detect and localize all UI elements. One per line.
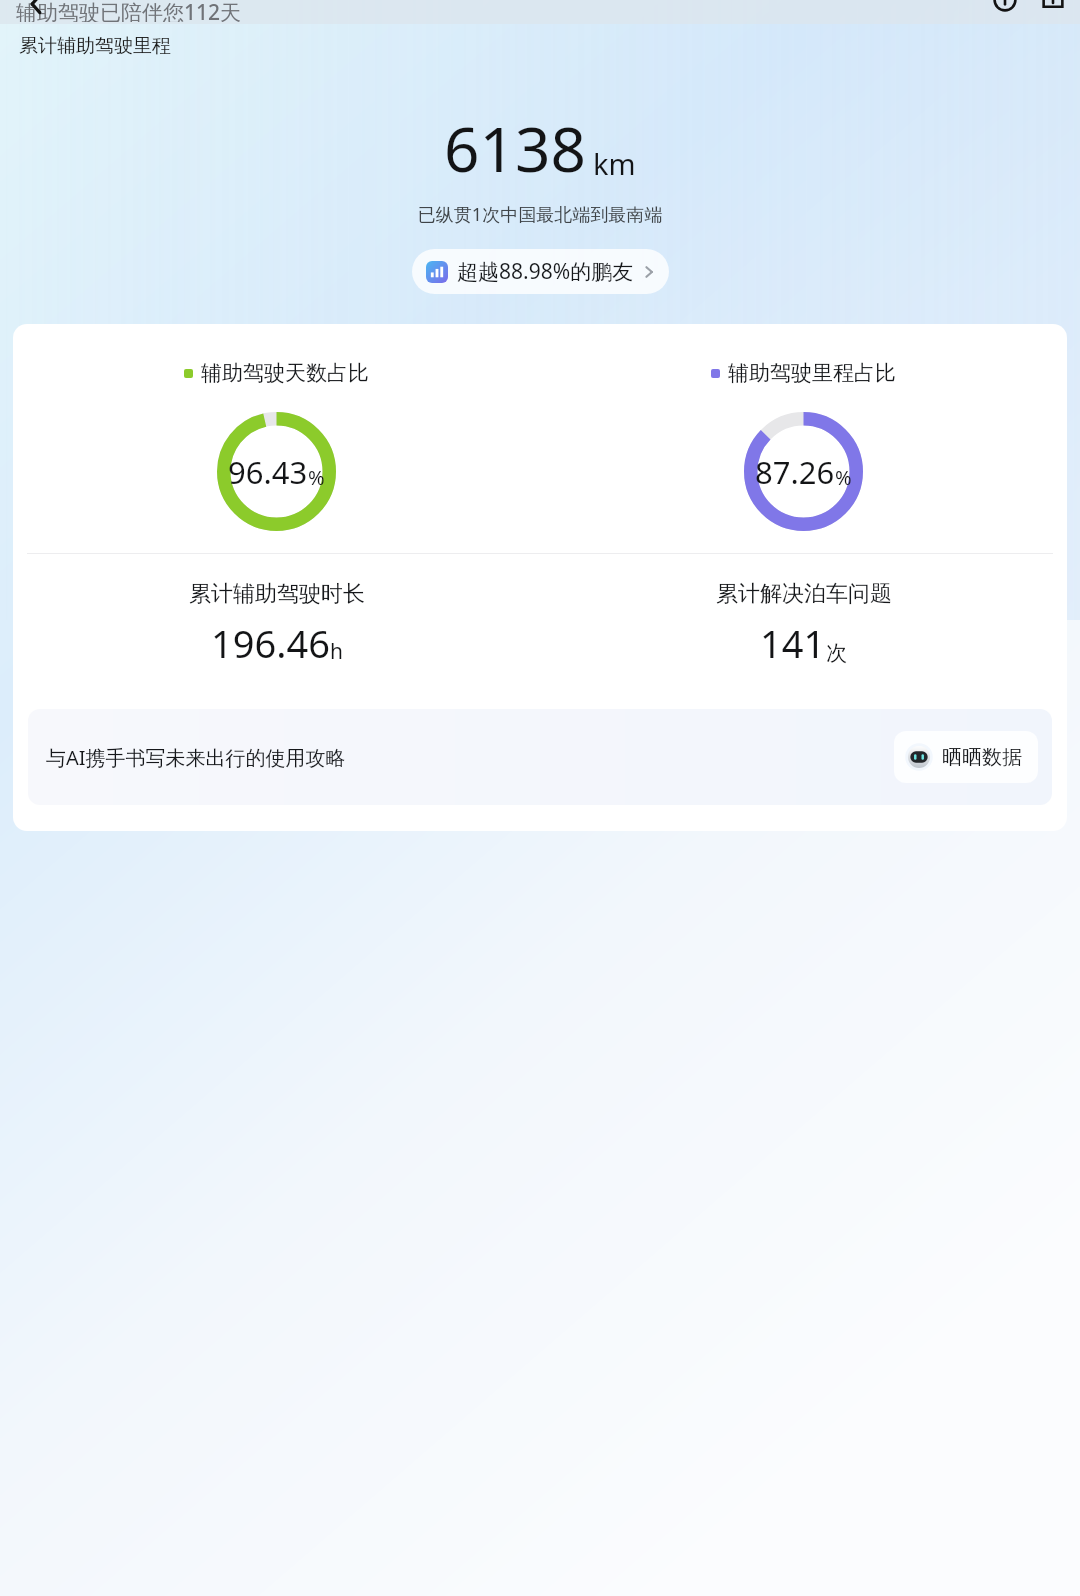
staticText: h bbox=[330, 637, 343, 666]
staticText: 已纵贯1次中国最北端到最南端 bbox=[0, 202, 1080, 227]
button[interactable]: Back bbox=[24, 0, 48, 16]
staticText: 累计辅助驾驶里程 bbox=[19, 34, 171, 58]
button[interactable]: 与AI携手书写未来出行的使用攻略 bbox=[28, 709, 1052, 805]
staticText: 141 bbox=[760, 617, 826, 669]
button[interactable]: Share bbox=[1040, 0, 1066, 12]
staticText: 辅助驾驶里程占比 bbox=[728, 360, 896, 386]
button[interactable]: 超越88.98%的鹏友 bbox=[412, 249, 669, 294]
staticText: 辅助驾驶天数占比 bbox=[201, 360, 369, 386]
staticText: 超越88.98%的鹏友 bbox=[457, 257, 634, 286]
staticText: 96.43 bbox=[228, 451, 308, 493]
staticText: 辅助驾驶已陪伴您112天 bbox=[16, 0, 242, 22]
staticText: km bbox=[593, 144, 636, 183]
staticText: % bbox=[308, 464, 325, 491]
staticText: % bbox=[835, 464, 852, 491]
staticText: 累计辅助驾驶时长 bbox=[189, 580, 365, 608]
staticText: 6138 bbox=[444, 106, 586, 190]
staticText: 累计解决泊车问题 bbox=[716, 580, 892, 608]
staticText: 与AI携手书写未来出行的使用攻略 bbox=[46, 744, 874, 771]
staticText: 晒晒数据 bbox=[942, 745, 1022, 770]
button[interactable]: Info bbox=[992, 0, 1018, 12]
staticText: 87.26 bbox=[755, 451, 835, 493]
staticText: 次 bbox=[826, 640, 847, 666]
button[interactable]: 晒晒数据 bbox=[894, 731, 1038, 783]
staticText: 196.46 bbox=[211, 617, 330, 669]
